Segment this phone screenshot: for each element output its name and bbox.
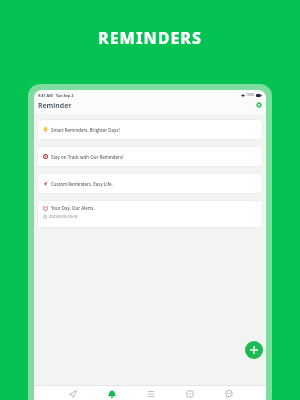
staticText: 2023/9/05 09:05 — [49, 214, 78, 219]
staticText: Custom Reminders, Easy Life. — [51, 181, 113, 187]
staticText: Reminder — [38, 101, 72, 111]
staticText: Your Day, Our Alerts. — [51, 205, 95, 211]
button[interactable] — [256, 102, 262, 108]
button[interactable] — [170, 387, 209, 400]
staticText: 100% — [246, 93, 255, 97]
button[interactable] — [131, 387, 170, 400]
button[interactable]: Smart Reminders, Brighter Days! — [37, 119, 263, 140]
button[interactable]: Stay on Track with Our Reminders! — [37, 146, 263, 167]
staticText: 9:41 AM Tue Sep 2 — [38, 93, 74, 98]
staticText: REMINDERS — [0, 27, 300, 49]
button[interactable]: Custom Reminders, Easy Life. — [37, 173, 263, 194]
button[interactable] — [245, 341, 263, 359]
button[interactable] — [53, 387, 92, 400]
button[interactable] — [209, 387, 248, 400]
button[interactable] — [92, 387, 131, 400]
button[interactable]: Your Day, Our Alerts. — [37, 200, 263, 228]
staticText: Smart Reminders, Brighter Days! — [51, 127, 120, 133]
staticText: Stay on Track with Our Reminders! — [51, 154, 124, 160]
